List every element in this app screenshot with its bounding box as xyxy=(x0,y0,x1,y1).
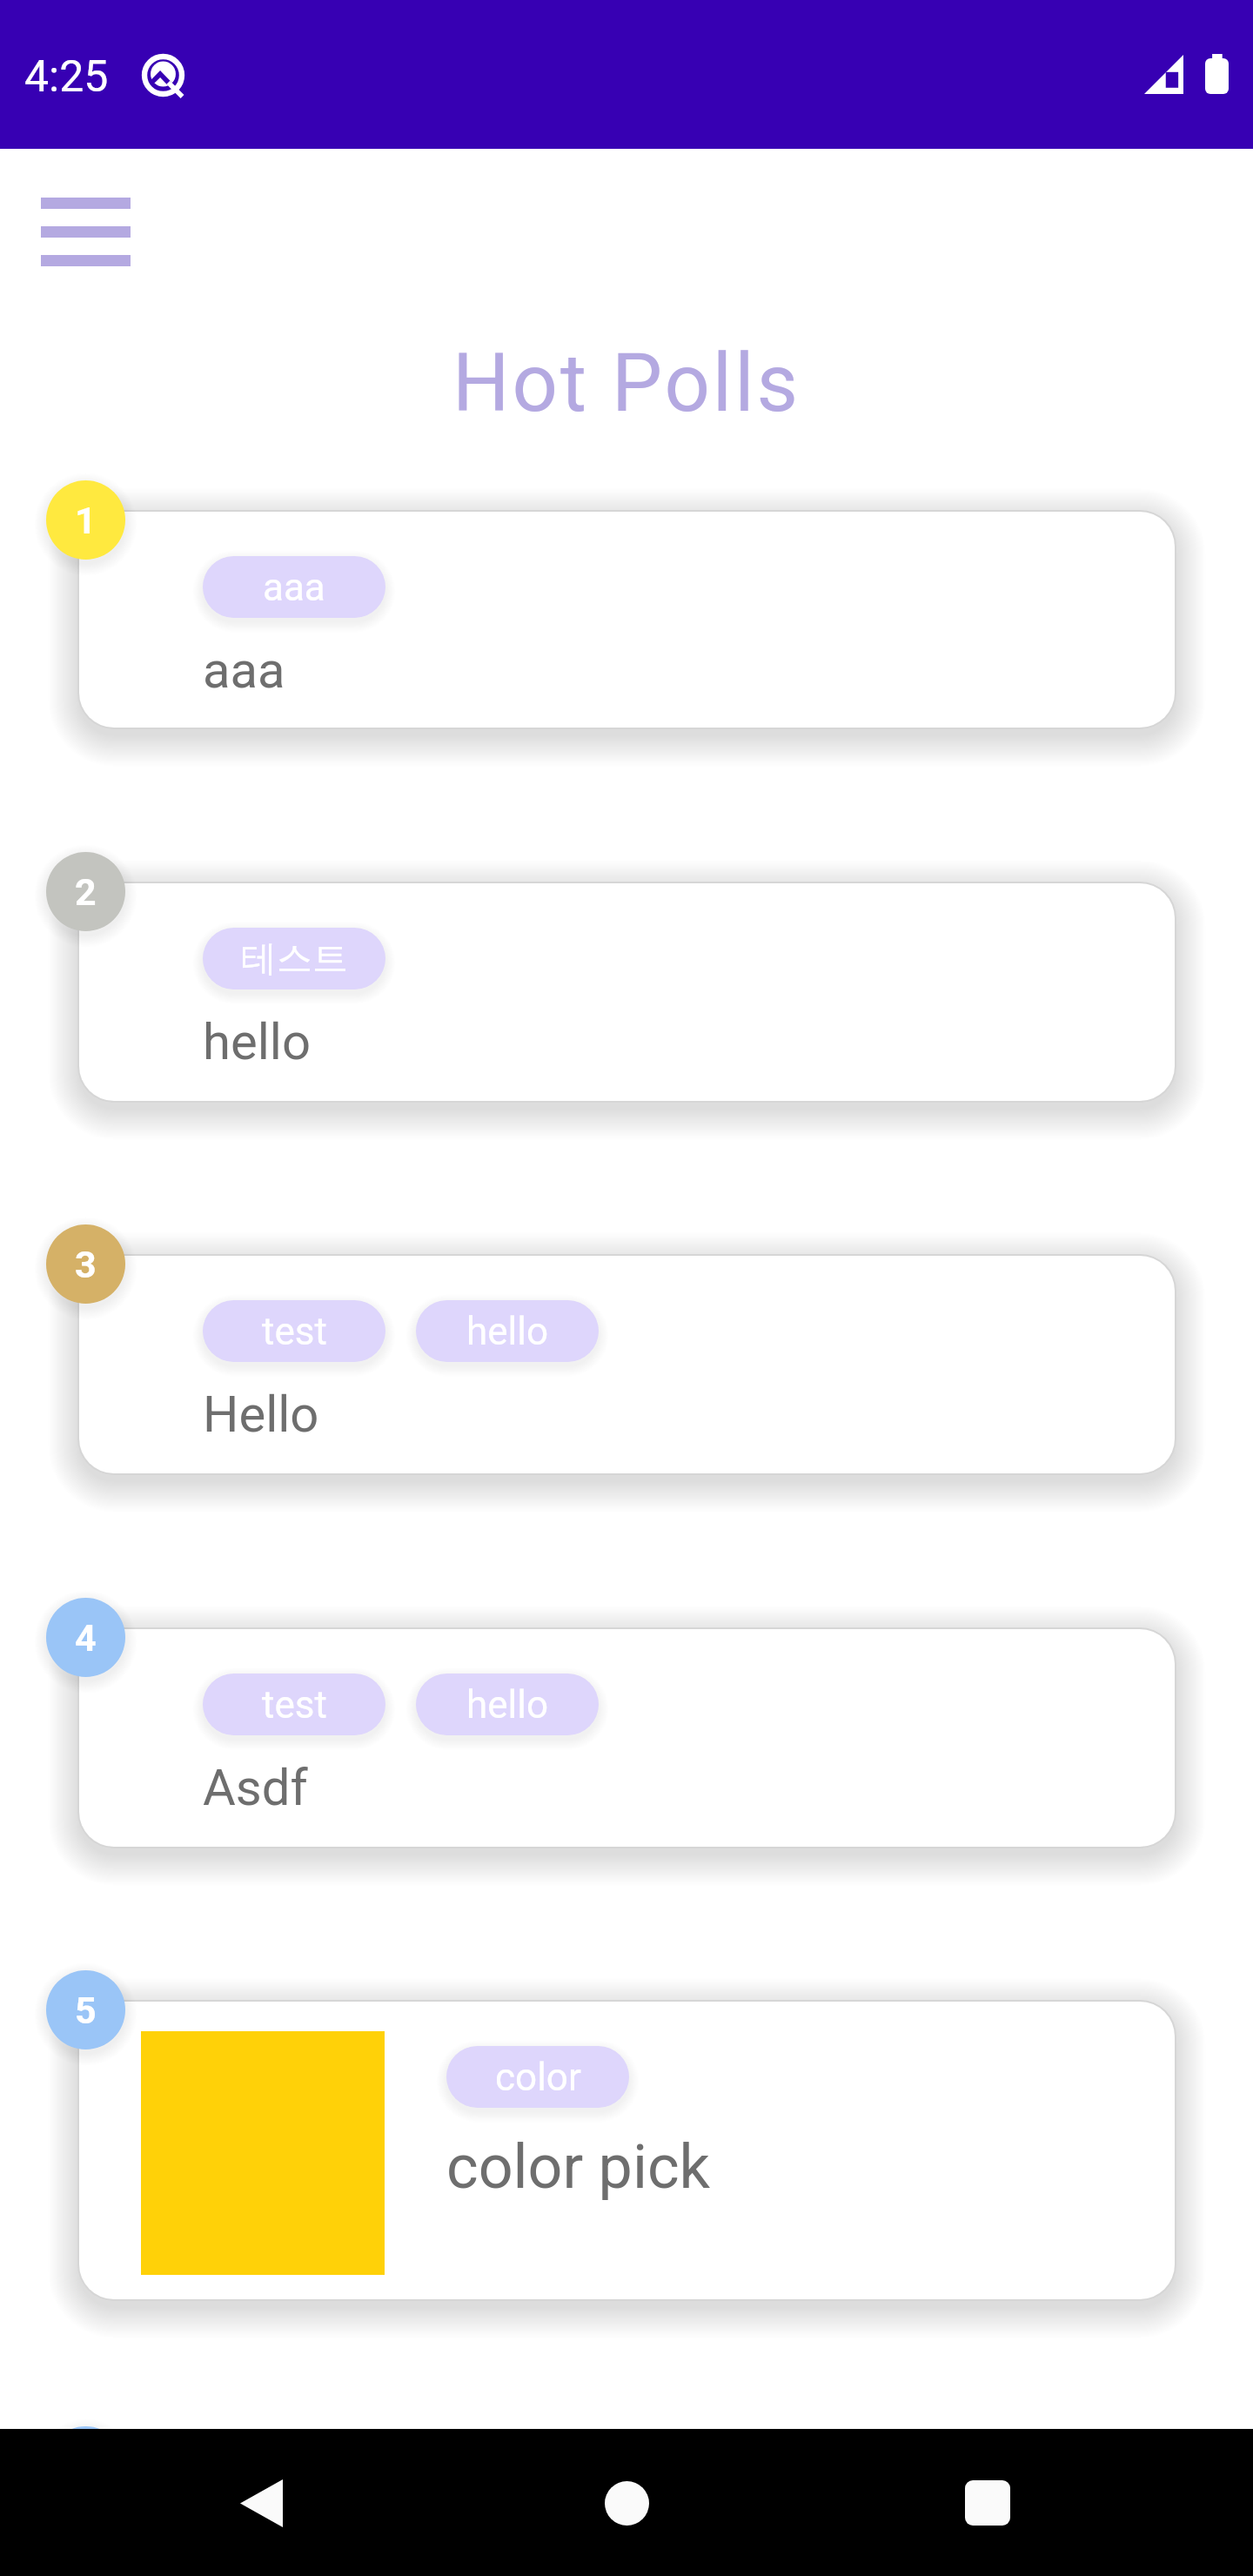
button[interactable]: 테스트 xyxy=(79,883,1175,1101)
staticText: 4:25 xyxy=(24,51,109,103)
button[interactable]: test xyxy=(203,1674,385,1735)
button[interactable]: x xyxy=(203,2502,385,2564)
button[interactable]: aaa xyxy=(203,556,385,618)
staticText: 3 xyxy=(75,1243,97,1286)
staticText: aaa xyxy=(203,641,285,700)
staticText: aaa xyxy=(263,565,325,610)
button[interactable]: 2 xyxy=(46,852,125,931)
button[interactable]: Open navigation menu xyxy=(41,198,131,266)
button[interactable]: Home xyxy=(583,2459,670,2546)
staticText: hello xyxy=(203,1012,311,1071)
staticText: Hot Polls xyxy=(0,337,1253,431)
other: Android Q xyxy=(142,54,184,97)
button[interactable]: aaa xyxy=(79,512,1175,728)
button[interactable]: hello xyxy=(416,1300,599,1362)
button[interactable]: Recent apps xyxy=(944,2459,1031,2546)
staticText: color xyxy=(495,2055,581,2100)
button[interactable]: 1 xyxy=(46,480,125,560)
staticText: hello xyxy=(466,1682,549,1727)
button[interactable]: 4 xyxy=(46,1598,125,1677)
staticText: 4 xyxy=(75,1616,97,1660)
button[interactable]: hello xyxy=(416,1674,599,1735)
button[interactable]: color xyxy=(446,2046,629,2108)
staticText: 2 xyxy=(75,870,97,914)
staticText: Asdf xyxy=(203,1758,308,1817)
staticText: test xyxy=(262,1309,327,1354)
staticText: test xyxy=(262,1682,327,1727)
button[interactable]: Back xyxy=(218,2459,305,2546)
staticText: 5 xyxy=(75,1989,97,2032)
button[interactable]: test xyxy=(79,1256,1175,1473)
button[interactable]: 테스트 xyxy=(203,928,385,989)
button[interactable]: 6 xyxy=(46,2426,125,2506)
button[interactable]: 5 xyxy=(46,1970,125,2049)
staticText: color pick xyxy=(446,2131,711,2203)
staticText: Hello xyxy=(203,1385,319,1444)
button[interactable]: 3 xyxy=(46,1224,125,1304)
staticText: 1 xyxy=(75,499,97,542)
button[interactable]: color xyxy=(79,2002,1175,2299)
button[interactable]: test xyxy=(79,1629,1175,1847)
staticText: hello xyxy=(466,1309,549,1354)
button[interactable]: test xyxy=(203,1300,385,1362)
button[interactable]: x xyxy=(79,2458,1175,2576)
staticText: 테스트 xyxy=(241,936,348,982)
